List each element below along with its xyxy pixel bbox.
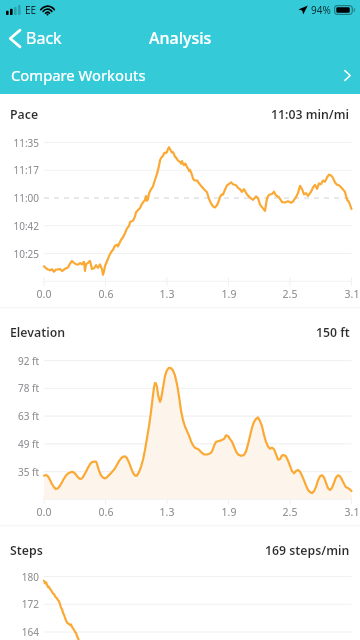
staticText: 180 xyxy=(0,570,39,584)
staticText: 0.6 xyxy=(92,287,120,301)
staticText: 164 xyxy=(0,625,39,639)
staticText: 63 ft xyxy=(0,409,39,423)
staticText: 1.9 xyxy=(215,287,243,301)
staticText: 10:42 xyxy=(0,219,39,233)
staticText: Analysis xyxy=(149,27,212,49)
staticText: 150 ft xyxy=(316,324,350,341)
staticText: 92 ft xyxy=(0,354,39,368)
staticText: 1.9 xyxy=(215,505,243,519)
staticText: 10:25 xyxy=(0,247,39,261)
button[interactable]: Back xyxy=(0,27,74,49)
staticText: Back xyxy=(26,27,62,49)
staticText: 3.1 xyxy=(338,287,360,301)
staticText: 78 ft xyxy=(0,381,39,395)
other: Compare Workouts xyxy=(344,70,351,81)
staticText: 169 steps/min xyxy=(265,542,350,559)
staticText: 1.3 xyxy=(153,505,181,519)
staticText: 35 ft xyxy=(0,465,39,479)
staticText: EE xyxy=(25,3,37,17)
staticText: Compare Workouts xyxy=(11,65,146,85)
staticText: Pace xyxy=(10,106,39,123)
staticText: 0.6 xyxy=(92,505,120,519)
staticText: 11:17 xyxy=(0,163,39,177)
staticText: 11:03 min/mi xyxy=(271,106,350,123)
staticText: 3.1 xyxy=(338,505,360,519)
staticText: 0.0 xyxy=(30,287,58,301)
staticText: 1.3 xyxy=(153,287,181,301)
staticText: 2.5 xyxy=(276,505,304,519)
staticText: 2.5 xyxy=(276,287,304,301)
staticText: Steps xyxy=(10,542,43,559)
button[interactable]: Compare Workouts xyxy=(0,56,360,94)
staticText: Elevation xyxy=(10,324,66,341)
staticText: 11:35 xyxy=(0,136,39,150)
staticText: 94% xyxy=(311,3,331,17)
staticText: 11:00 xyxy=(0,191,39,205)
staticText: 49 ft xyxy=(0,437,39,451)
staticText: 0.0 xyxy=(30,505,58,519)
staticText: 172 xyxy=(0,597,39,611)
